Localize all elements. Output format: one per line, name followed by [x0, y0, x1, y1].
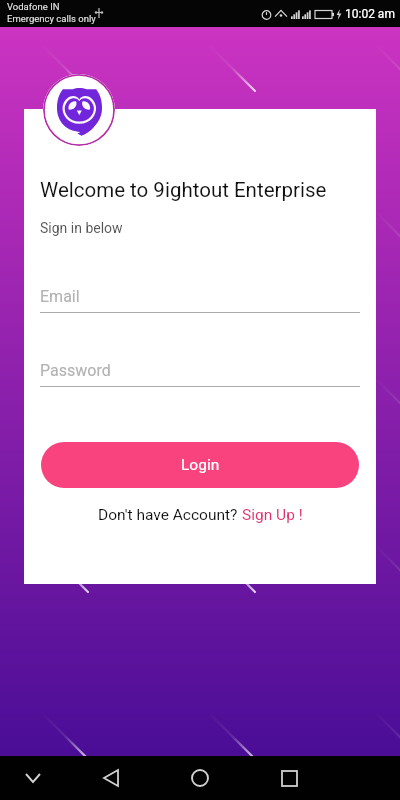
button[interactable]: Back [91, 756, 131, 800]
staticText: Email [40, 287, 80, 306]
button[interactable]: Login [41, 442, 359, 488]
staticText: 10:02 am [345, 7, 395, 21]
other: App logo [43, 74, 115, 146]
staticText: Vodafone IN [7, 1, 60, 12]
staticText: Don't have Account? [98, 506, 242, 524]
staticText: Sign Up ! [242, 506, 303, 524]
button[interactable]: Recents [269, 756, 309, 800]
staticText: Emergency calls only [7, 13, 96, 24]
button[interactable]: Hide keyboard [13, 756, 53, 800]
button[interactable]: Sign Up ! [242, 506, 303, 524]
button[interactable]: Home [180, 756, 220, 800]
staticText: Welcome to 9ightout Enterprise [40, 178, 327, 202]
staticText: Password [40, 361, 111, 380]
staticText: Sign in below [40, 220, 123, 236]
staticText: Login [181, 456, 220, 474]
